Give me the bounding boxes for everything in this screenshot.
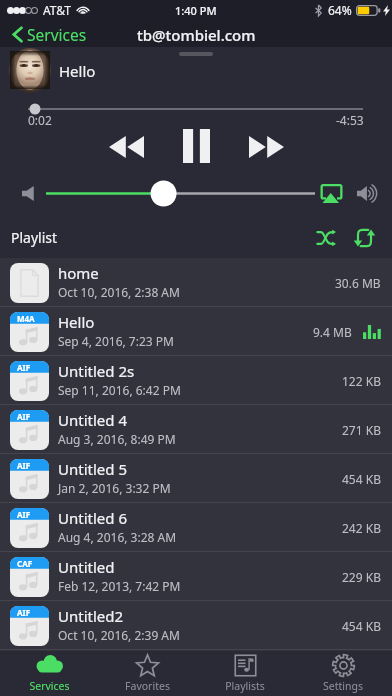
button[interactable]: home	[0, 258, 392, 307]
staticText: Favorites	[125, 679, 170, 693]
staticText: AIF	[17, 509, 31, 520]
staticText: 0:02	[28, 112, 52, 128]
staticText: Services	[29, 679, 70, 693]
staticText: Services	[27, 24, 87, 45]
staticText: AIF	[17, 362, 31, 373]
staticText: 9.4 MB	[313, 324, 352, 340]
button[interactable]: M4A	[0, 307, 392, 356]
staticText: Oct 10, 2016, 2:39 AM	[58, 627, 180, 643]
button[interactable]: Favorites	[98, 651, 196, 696]
staticText: 454 KB	[342, 471, 381, 487]
button[interactable]: Next	[238, 128, 294, 166]
staticText: Aug 4, 2016, 3:28 AM	[58, 529, 177, 545]
staticText: Settings	[323, 679, 363, 693]
staticText: Untitled 5	[58, 459, 127, 479]
staticText: 271 KB	[342, 422, 381, 438]
staticText: AIF	[17, 607, 31, 618]
staticText: CAF	[17, 558, 33, 569]
staticText: Jan 2, 2016, 3:32 PM	[58, 480, 171, 496]
staticText: Untitled 6	[58, 508, 127, 528]
button[interactable]: Previous	[98, 128, 154, 166]
staticText: 454 KB	[342, 618, 381, 634]
staticText: Untitled	[58, 557, 115, 577]
staticText: Sep 11, 2016, 6:42 PM	[58, 382, 181, 398]
staticText: AIF	[17, 411, 31, 422]
staticText: Hello	[59, 61, 96, 81]
staticText: AT&T	[43, 2, 71, 18]
staticText: Untitled 4	[58, 410, 127, 430]
button[interactable]: Pause	[170, 126, 222, 166]
staticText: Feb 12, 2013, 7:42 PM	[58, 578, 181, 594]
staticText: Untitled2	[58, 606, 124, 626]
staticText: -4:53	[336, 112, 364, 128]
staticText: 122 KB	[342, 373, 381, 389]
button[interactable]: AIF	[0, 503, 392, 552]
button[interactable]: CAF	[0, 552, 392, 601]
staticText: AIF	[17, 460, 31, 471]
staticText: 242 KB	[342, 520, 381, 536]
button[interactable]: Settings	[294, 651, 392, 696]
staticText: Untitled 2s	[58, 361, 135, 381]
button[interactable]: AirPlay	[316, 179, 346, 207]
button[interactable]: Playlists	[196, 651, 294, 696]
staticText: 229 KB	[342, 569, 381, 585]
staticText: 64%	[328, 2, 352, 18]
button[interactable]: Repeat	[345, 219, 383, 257]
staticText: 30.6 MB	[335, 275, 381, 291]
staticText: Sep 4, 2016, 7:23 PM	[58, 333, 174, 349]
staticText: 1:40 PM	[175, 3, 217, 18]
button[interactable]: AIF	[0, 454, 392, 503]
button[interactable]: Services	[0, 651, 98, 696]
button[interactable]: Shuffle	[307, 219, 345, 257]
button[interactable]: AIF	[0, 405, 392, 454]
button[interactable]: AIF	[0, 601, 392, 650]
staticText: Oct 10, 2016, 2:38 AM	[58, 284, 180, 300]
staticText: M4A	[17, 313, 35, 324]
staticText: Playlist	[11, 228, 58, 247]
staticText: home	[58, 263, 99, 283]
button[interactable]: AIF	[0, 356, 392, 405]
button[interactable]: Services	[0, 20, 97, 47]
staticText: Aug 3, 2016, 8:49 PM	[58, 431, 176, 447]
staticText: Hello	[58, 312, 95, 332]
staticText: Playlists	[225, 679, 265, 693]
staticText: tb@tombiel.com	[137, 25, 256, 45]
